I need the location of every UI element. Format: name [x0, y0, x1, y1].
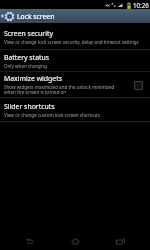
- staticText: View or change custom lock screen shortc…: [4, 112, 100, 118]
- button[interactable]: Battery status: [0, 50, 150, 71]
- staticText: Only when charging: [4, 63, 47, 69]
- staticText: 10:26: [133, 1, 149, 9]
- button[interactable]: Maximize widgets: [0, 72, 150, 97]
- staticText: Screen security: [4, 29, 53, 38]
- staticText: View or change lock screen security, del…: [4, 39, 139, 45]
- button[interactable]: Maximize widgets checkbox: [133, 80, 143, 90]
- staticText: Lock screen: [17, 12, 55, 21]
- button[interactable]: Home: [65, 232, 85, 250]
- staticText: Slider shortcuts: [4, 102, 55, 111]
- staticText: Maximize widgets: [4, 74, 63, 83]
- button[interactable]: Slider shortcuts: [0, 98, 150, 121]
- button[interactable]: Screen security: [0, 23, 150, 49]
- button[interactable]: Recent apps: [110, 232, 130, 250]
- button[interactable]: Up: [0, 9, 15, 23]
- staticText: Battery status: [4, 53, 50, 62]
- staticText: Show widgets maximized and the unlock mi…: [4, 84, 120, 96]
- button[interactable]: Back: [20, 232, 40, 250]
